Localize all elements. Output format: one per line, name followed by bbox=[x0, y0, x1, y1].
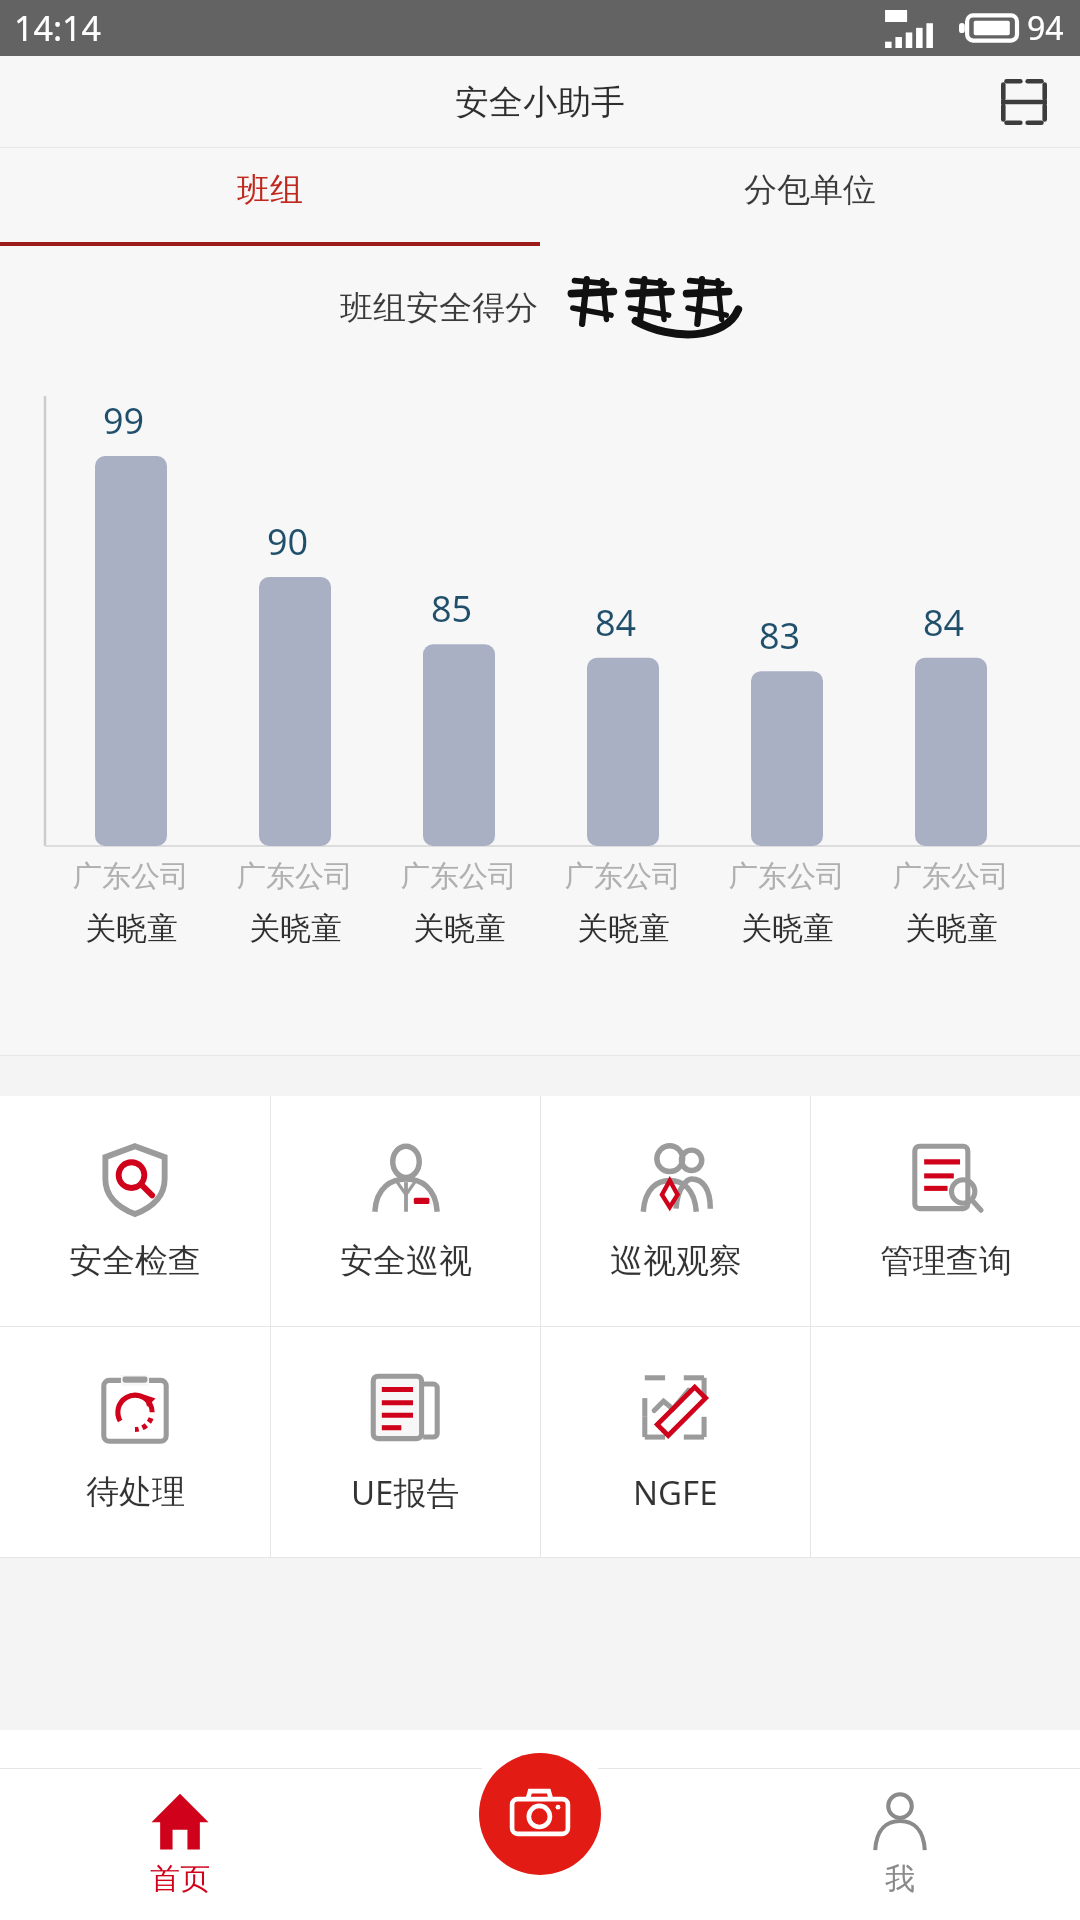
staticText: 关晓童 bbox=[577, 909, 670, 948]
staticText: 85 bbox=[431, 584, 473, 633]
button[interactable]: 巡视观察 bbox=[541, 1096, 810, 1326]
staticText: 广东公司 bbox=[729, 858, 845, 895]
button[interactable]: 待处理 bbox=[0, 1327, 270, 1557]
button[interactable]: 分包单位 bbox=[540, 148, 1080, 246]
staticText: 关晓童 bbox=[249, 909, 342, 948]
staticText: 关晓童 bbox=[741, 909, 834, 948]
staticText: 关晓童 bbox=[413, 909, 506, 948]
staticText: 安全检查 bbox=[69, 1240, 201, 1282]
staticText: 广东公司 bbox=[893, 858, 1009, 895]
button[interactable]: 我 bbox=[720, 1768, 1080, 1920]
staticText: 广东公司 bbox=[237, 858, 353, 895]
staticText: 巡视观察 bbox=[610, 1240, 742, 1282]
button[interactable]: 安全检查 bbox=[0, 1096, 270, 1326]
staticText: 关晓童 bbox=[905, 909, 998, 948]
button[interactable]: Camera bbox=[479, 1753, 601, 1875]
staticText: 待处理 bbox=[86, 1471, 185, 1513]
staticText: 安全小助手 bbox=[455, 81, 625, 124]
staticText: 广东公司 bbox=[73, 858, 189, 895]
staticText: 84 bbox=[595, 598, 637, 647]
staticText: 14:14 bbox=[14, 5, 101, 51]
staticText: 班组安全得分 bbox=[340, 287, 538, 329]
staticText: 安全巡视 bbox=[340, 1240, 472, 1282]
staticText: 83 bbox=[759, 611, 801, 660]
staticText: 首页 bbox=[150, 1860, 210, 1898]
staticText: 班组 bbox=[237, 169, 303, 211]
button[interactable]: NGFE bbox=[541, 1327, 810, 1557]
staticText: UE报告 bbox=[351, 1470, 460, 1515]
button[interactable]: Scan bbox=[992, 70, 1056, 134]
staticText: 关晓童 bbox=[85, 909, 178, 948]
button[interactable]: 首页 bbox=[0, 1768, 360, 1920]
button[interactable]: UE报告 bbox=[271, 1327, 540, 1557]
staticText: NGFE bbox=[633, 1470, 718, 1515]
button[interactable]: 安全巡视 bbox=[271, 1096, 540, 1326]
button[interactable]: 管理查询 bbox=[811, 1096, 1080, 1326]
staticText: 管理查询 bbox=[880, 1240, 1012, 1282]
staticText: 94 bbox=[1027, 6, 1064, 50]
staticText: 90 bbox=[267, 517, 309, 566]
staticText: 广东公司 bbox=[401, 858, 517, 895]
staticText: 我 bbox=[885, 1860, 915, 1898]
staticText: 84 bbox=[923, 598, 965, 647]
staticText: 分包单位 bbox=[744, 169, 876, 211]
button[interactable]: 班组 bbox=[0, 148, 540, 246]
staticText: 广东公司 bbox=[565, 858, 681, 895]
staticText: 99 bbox=[103, 396, 145, 445]
